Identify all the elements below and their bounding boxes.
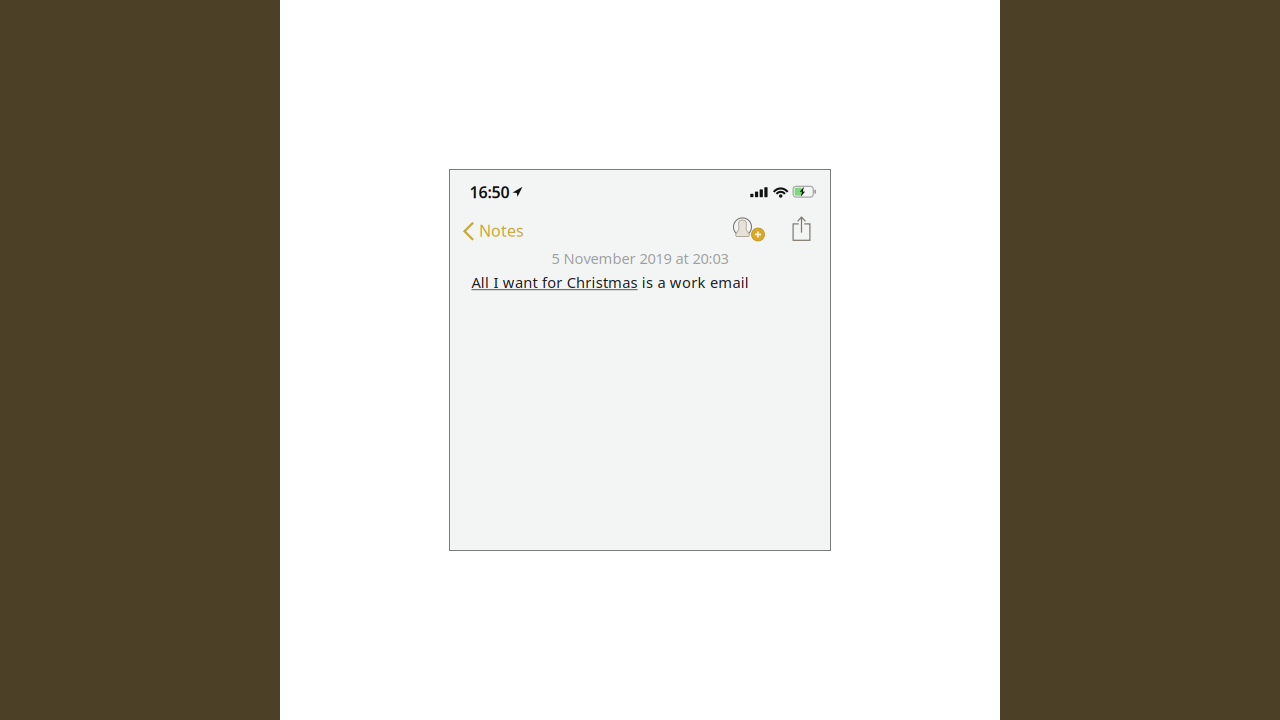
staticText: 16:50 <box>469 181 509 203</box>
button[interactable]: Notes <box>463 216 525 248</box>
button[interactable]: All I want for Christmas <box>449 272 830 292</box>
button[interactable]: Share <box>787 214 815 243</box>
staticText: All I want for Christmas <box>471 272 638 292</box>
staticText: is a work email <box>638 272 749 292</box>
staticText: Notes <box>479 220 524 241</box>
staticText: 5 November 2019 at 20:03 <box>551 248 728 268</box>
button[interactable]: Add People <box>730 214 767 245</box>
